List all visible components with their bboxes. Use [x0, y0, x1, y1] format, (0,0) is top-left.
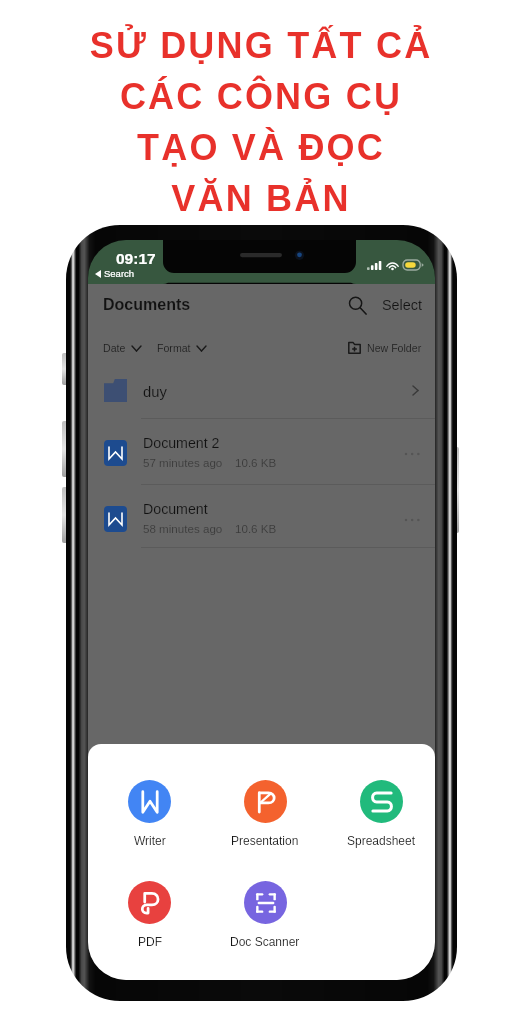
staticText: Spreadsheet	[347, 834, 416, 847]
staticText: PDF	[138, 935, 162, 948]
button[interactable]: Select	[382, 297, 422, 313]
staticText: Documents	[103, 296, 191, 314]
staticText: 10.6 KB	[235, 456, 277, 469]
staticText: Format	[157, 342, 191, 354]
button[interactable]: Doc Scanner	[207, 881, 323, 948]
button[interactable]: PDF	[92, 881, 207, 948]
staticText: SỬ DỤNG TẤT CẢ CÁC CÔNG CỤ TẠO VÀ ĐỌC VĂ…	[0, 25, 523, 219]
button[interactable]: More options	[404, 515, 422, 525]
staticText: Document 2	[143, 435, 220, 451]
button[interactable]: Date	[103, 342, 141, 354]
staticText: Search	[104, 268, 135, 279]
staticText: 10.6 KB	[235, 522, 277, 535]
staticText: Date	[103, 342, 126, 354]
button[interactable]: New Folder	[348, 341, 422, 354]
button[interactable]: Format	[157, 342, 206, 354]
button[interactable]: Writer	[92, 780, 207, 847]
staticText: 09:17	[116, 250, 156, 267]
staticText: Presentation	[231, 834, 299, 847]
button[interactable]: Search	[346, 294, 368, 316]
staticText: duy	[143, 384, 167, 401]
button[interactable]: More options	[404, 449, 422, 459]
button[interactable]: Document	[88, 485, 435, 547]
staticText: Doc Scanner	[230, 935, 300, 948]
button[interactable]: Document 2	[88, 419, 435, 484]
staticText: Select	[382, 297, 422, 313]
button[interactable]: Presentation	[207, 780, 323, 847]
staticText: 58 minutes ago	[143, 522, 223, 535]
staticText: New Folder	[367, 342, 422, 354]
button[interactable]: duy	[88, 366, 435, 418]
staticText: 57 minutes ago	[143, 456, 223, 469]
staticText: Writer	[134, 834, 166, 847]
staticText: Document	[143, 501, 208, 517]
button[interactable]: Spreadsheet	[323, 780, 435, 847]
